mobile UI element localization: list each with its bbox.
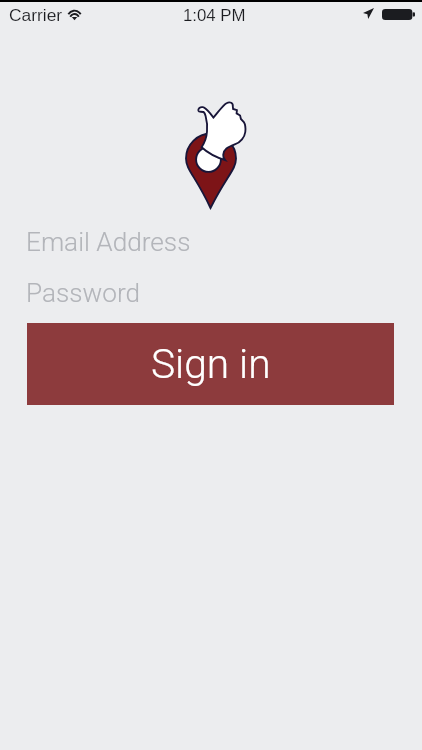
- staticText: Password: [26, 278, 141, 309]
- button[interactable]: Sign in: [27, 323, 394, 405]
- staticText: Sign in: [151, 340, 271, 388]
- staticText: Carrier: [9, 5, 63, 24]
- staticText: Email Address: [26, 227, 191, 258]
- staticText: 1:04 PM: [183, 6, 246, 25]
- button[interactable]: Password: [0, 269, 422, 317]
- button[interactable]: Email Address: [0, 218, 422, 266]
